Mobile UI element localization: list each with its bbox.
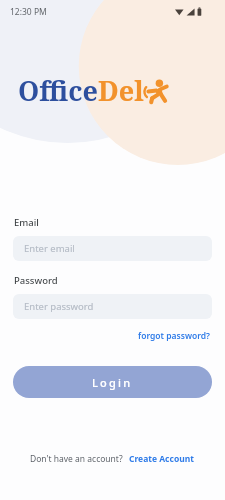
button[interactable]: Login — [13, 366, 212, 398]
button[interactable]: Enter password — [13, 294, 212, 319]
staticText: Enter email — [24, 242, 75, 255]
staticText: Don't have an account? — [30, 453, 123, 465]
staticText: Email — [14, 216, 39, 229]
staticText: Create Account — [129, 453, 194, 465]
staticText: Enter password — [24, 300, 94, 313]
button[interactable]: Enter email — [13, 236, 212, 261]
staticText: Password — [14, 274, 58, 287]
button[interactable]: forgot password? — [136, 328, 212, 344]
button[interactable]: Create Account — [128, 452, 195, 466]
staticText: Office — [18, 72, 98, 109]
staticText: Del — [98, 72, 144, 109]
staticText: Login — [92, 375, 133, 390]
staticText: 12:30 PM — [10, 6, 47, 18]
staticText: forgot password? — [138, 330, 210, 342]
